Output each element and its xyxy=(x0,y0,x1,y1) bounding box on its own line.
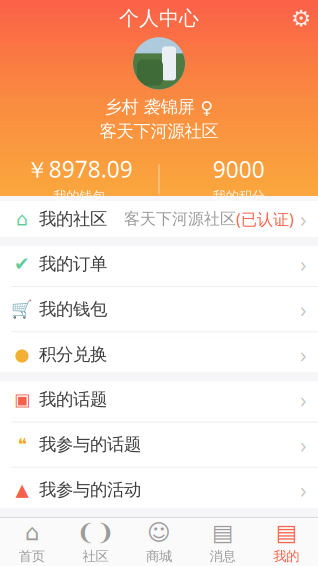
staticText: 我的钱包 xyxy=(39,299,107,320)
button[interactable]: ✔ xyxy=(0,246,318,282)
staticText: ⌂ xyxy=(25,519,39,545)
staticText: 商城 xyxy=(146,548,172,565)
staticText: › xyxy=(300,205,307,233)
staticText: ￥8978.09 xyxy=(26,154,133,184)
button[interactable]: ⌂ xyxy=(0,201,318,237)
staticText: ⚙ xyxy=(291,5,311,31)
button[interactable]: ❨❩ xyxy=(64,518,127,566)
staticText: ❨❩ xyxy=(76,519,114,545)
staticText: ▣ xyxy=(14,390,30,409)
staticText: ☺ xyxy=(147,519,171,545)
staticText: ✔ xyxy=(14,253,30,275)
staticText: › xyxy=(300,250,307,278)
staticText: 社区 xyxy=(82,548,108,565)
staticText: 客天下河源社区 xyxy=(124,209,236,229)
staticText: › xyxy=(300,476,307,504)
staticText: ● xyxy=(14,345,29,364)
button[interactable]: ▤ xyxy=(191,518,254,566)
staticText: 积分兑换 xyxy=(39,344,107,365)
staticText: ❝ xyxy=(17,435,26,454)
button[interactable]: Settings xyxy=(284,3,318,33)
staticText: 我的积分 xyxy=(213,188,265,205)
staticText: › xyxy=(300,340,307,368)
button[interactable]: ☺ xyxy=(127,518,191,566)
staticText: 首页 xyxy=(19,548,45,565)
staticText: › xyxy=(300,385,307,413)
staticText: ▤ xyxy=(276,519,297,545)
button[interactable]: ❝ xyxy=(0,427,318,463)
staticText: 我的社区 xyxy=(39,208,107,230)
staticText: › xyxy=(300,295,307,323)
button[interactable]: ▣ xyxy=(0,381,318,417)
staticText: 客天下河源社区 xyxy=(99,121,218,142)
button[interactable]: ⌂ xyxy=(0,518,64,566)
button[interactable]: ▤ xyxy=(254,518,318,566)
staticText: 我的订单 xyxy=(39,253,107,275)
staticText: 我的 xyxy=(273,548,299,565)
staticText: 我的钱包 xyxy=(53,188,105,205)
staticText: 乡村 袭锦屏 ♀ xyxy=(104,96,213,118)
button[interactable]: ● xyxy=(0,336,318,372)
staticText: › xyxy=(300,430,307,459)
staticText: 9000 xyxy=(213,154,265,184)
staticText: 我参与的话题 xyxy=(39,434,141,455)
staticText: ⌂ xyxy=(16,208,28,230)
button[interactable]: 🛒 xyxy=(0,291,318,327)
staticText: 个人中心 xyxy=(119,6,199,31)
staticText: 我的话题 xyxy=(39,389,107,410)
button[interactable]: ▲ xyxy=(0,472,318,508)
staticText: 消息 xyxy=(210,548,236,565)
staticText: (已认证) xyxy=(236,208,294,230)
staticText: 🛒 xyxy=(11,299,33,319)
staticText: ▤ xyxy=(212,519,233,545)
staticText: ▲ xyxy=(15,480,28,500)
staticText: 我参与的活动 xyxy=(39,479,141,500)
